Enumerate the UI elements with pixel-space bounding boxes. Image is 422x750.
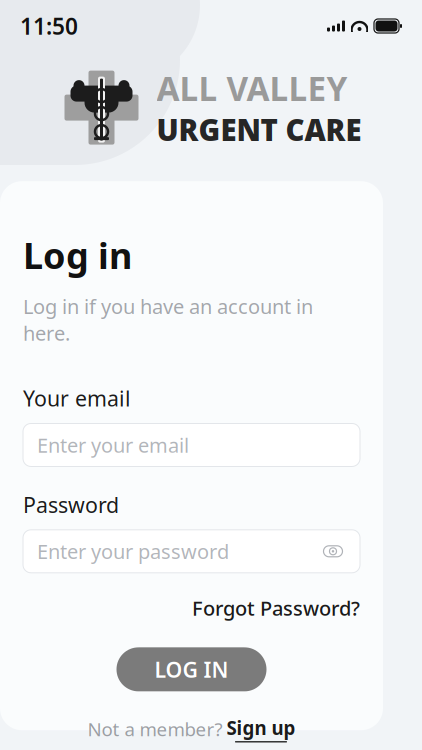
staticText: 11:50: [20, 11, 78, 41]
staticText: ALL VALLEY: [156, 66, 347, 110]
staticText: Sign up: [226, 715, 295, 740]
button[interactable]: Show password: [320, 538, 346, 564]
staticText: Password: [23, 490, 119, 519]
button[interactable]: LOG IN: [116, 647, 266, 691]
button[interactable]: Forgot Password?: [192, 595, 360, 621]
staticText: Log in: [23, 231, 132, 279]
button[interactable]: Not a member?: [87, 715, 295, 742]
staticText: Enter your password: [37, 538, 229, 565]
staticText: Log in if you have an account in here.: [23, 293, 313, 346]
staticText: Not a member?: [87, 716, 222, 741]
staticText: Your email: [23, 384, 131, 412]
staticText: Enter your email: [37, 432, 189, 458]
staticText: URGENT CARE: [156, 110, 361, 149]
staticText: LOG IN: [154, 655, 228, 683]
staticText: Forgot Password?: [192, 595, 360, 621]
